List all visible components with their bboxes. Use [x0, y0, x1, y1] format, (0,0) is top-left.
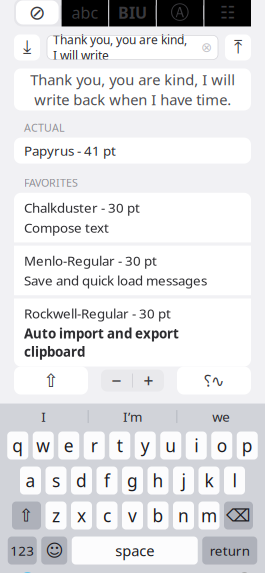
button[interactable]: o	[211, 431, 232, 459]
button[interactable]: Papyrus - 41 pt	[14, 138, 251, 164]
button[interactable]: p	[237, 431, 258, 459]
staticText: 🌐	[14, 572, 39, 573]
button[interactable]: Ⓐ	[157, 0, 203, 26]
staticText: q	[12, 434, 23, 457]
button[interactable]: j	[173, 466, 194, 494]
button[interactable]: a	[20, 466, 41, 494]
button[interactable]: ⇧	[12, 501, 41, 529]
button[interactable]: f	[96, 466, 117, 494]
button[interactable]: Rockwell-Regular - 30 pt	[14, 298, 251, 366]
staticText: v	[128, 504, 137, 527]
button[interactable]: x	[71, 501, 92, 529]
staticText: o	[217, 434, 227, 457]
staticText: t	[117, 434, 123, 457]
button[interactable]: l	[224, 466, 245, 494]
button[interactable]: Increase size	[133, 369, 164, 391]
staticText: 123	[10, 542, 34, 559]
button[interactable]: space	[72, 536, 198, 564]
staticText: ⊘	[29, 1, 46, 24]
button[interactable]: Load from file	[14, 34, 40, 60]
staticText: ⸮∿	[204, 370, 224, 391]
button[interactable]: c	[96, 501, 117, 529]
staticText: 🎤	[225, 572, 250, 573]
button[interactable]: n	[173, 501, 194, 529]
staticText: Rockwell-Regular - 30 pt	[24, 304, 171, 322]
staticText: Auto import and export clipboard	[24, 324, 179, 360]
staticText: return	[210, 542, 250, 559]
button[interactable]: y	[135, 431, 156, 459]
staticText: ☺	[45, 541, 63, 560]
staticText: h	[152, 469, 163, 492]
button[interactable]: Decrease size	[101, 369, 132, 391]
staticText: ⤒	[234, 38, 242, 57]
button[interactable]: Menlo-Regular - 30 pt	[14, 246, 251, 296]
button[interactable]: b	[147, 501, 168, 529]
button[interactable]: Save to file	[225, 34, 251, 60]
staticText: y	[141, 434, 150, 457]
button[interactable]: Signature	[177, 366, 251, 394]
button[interactable]: z	[45, 501, 66, 529]
staticText: ⊗	[201, 40, 212, 55]
staticText: i	[194, 434, 198, 457]
button[interactable]: e	[58, 431, 79, 459]
button[interactable]: ⊘	[14, 0, 61, 26]
staticText: FAVORITES	[24, 176, 78, 190]
button[interactable]: Thank you, you are kind, I will write	[47, 35, 218, 59]
staticText: r	[91, 434, 98, 457]
staticText: space	[115, 541, 154, 560]
button[interactable]: i	[186, 431, 207, 459]
button[interactable]: ☷	[204, 0, 251, 26]
button[interactable]: we	[177, 403, 265, 429]
button[interactable]: return	[202, 536, 257, 564]
staticText: e	[64, 434, 74, 457]
staticText: Papyrus - 41 pt	[24, 142, 116, 159]
button[interactable]: v	[122, 501, 143, 529]
staticText: ACTUAL	[24, 120, 65, 135]
button[interactable]: m	[198, 501, 219, 529]
button[interactable]: g	[122, 466, 143, 494]
button[interactable]: I’m	[89, 403, 176, 429]
button[interactable]: d	[71, 466, 92, 494]
staticText: m	[201, 504, 217, 527]
staticText: x	[77, 504, 86, 527]
button[interactable]: ⌫	[224, 501, 253, 529]
staticText: abc	[71, 2, 98, 23]
staticText: Save and quick load messages	[24, 271, 207, 290]
button[interactable]: ☺	[41, 536, 67, 564]
staticText: u	[165, 434, 176, 457]
button[interactable]: q	[7, 431, 28, 459]
button[interactable]: abc	[62, 0, 108, 26]
button[interactable]: k	[198, 466, 219, 494]
staticText: BIU	[118, 2, 147, 23]
button[interactable]: w	[33, 431, 54, 459]
button[interactable]: s	[45, 466, 66, 494]
staticText: c	[103, 504, 111, 527]
button[interactable]: r	[84, 431, 105, 459]
button[interactable]: I	[0, 403, 88, 429]
button[interactable]: BIU	[109, 0, 156, 26]
button[interactable]: u	[160, 431, 181, 459]
staticText: b	[152, 504, 163, 527]
button[interactable]: Chalkduster - 30 pt	[14, 193, 251, 243]
staticText: ⤓	[23, 38, 31, 57]
staticText: d	[76, 469, 87, 492]
staticText: Chalkduster - 30 pt	[24, 199, 140, 216]
staticText: ⇧	[19, 506, 34, 525]
button[interactable]: 123	[8, 536, 37, 564]
staticText: ⇧	[43, 370, 59, 391]
staticText: g	[127, 469, 138, 492]
button[interactable]: Switch keyboard	[10, 568, 44, 573]
staticText: Compose text	[24, 218, 109, 237]
staticText: k	[204, 469, 213, 492]
button[interactable]: Dictate	[221, 568, 255, 573]
staticText: Ⓐ	[171, 1, 190, 24]
staticText: Menlo-Regular - 30 pt	[24, 252, 157, 269]
button[interactable]: Share	[14, 366, 88, 394]
staticText: s	[52, 469, 60, 492]
staticText: n	[178, 504, 189, 527]
staticText: f	[104, 469, 110, 492]
button[interactable]: h	[147, 466, 168, 494]
button[interactable]: t	[109, 431, 130, 459]
staticText: I’m	[123, 408, 142, 425]
staticText: we	[212, 408, 230, 425]
